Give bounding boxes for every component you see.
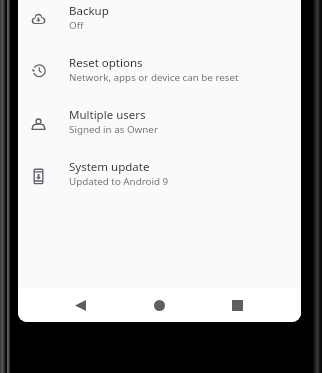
button[interactable]: Recent apps: [220, 288, 254, 322]
staticText: Updated to Android 9: [69, 175, 169, 188]
staticText: Multiple users: [69, 107, 146, 123]
staticText: Network, apps or device can be reset: [69, 71, 239, 84]
button[interactable]: Home: [142, 288, 176, 322]
button[interactable]: Backup: [18, 0, 301, 44]
button[interactable]: Multiple users: [18, 96, 301, 148]
button[interactable]: Reset options: [18, 44, 301, 96]
staticText: Off: [69, 19, 84, 32]
button[interactable]: Back: [63, 288, 97, 322]
button[interactable]: System update: [18, 148, 301, 200]
staticText: System update: [69, 159, 150, 175]
staticText: Backup: [69, 3, 109, 19]
staticText: Signed in as Owner: [69, 123, 158, 136]
staticText: Reset options: [69, 55, 143, 71]
